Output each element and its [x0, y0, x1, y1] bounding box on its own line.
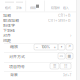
staticText: 字体: [15, 5, 21, 10]
staticText: 对齐: [3, 32, 11, 38]
button[interactable]: 间距: [0, 38, 76, 43]
staticText: ☷: [64, 64, 67, 68]
button[interactable]: Align left: [58, 53, 65, 59]
button[interactable]: 对齐: [0, 33, 76, 38]
button[interactable]: 插入: [61, 0, 72, 12]
staticText: 100%: [41, 45, 50, 49]
button[interactable]: 格式: [3, 0, 17, 12]
staticText: ↗: [68, 45, 71, 49]
staticText: ☰: [53, 64, 56, 68]
button[interactable]: 取消加粗: [0, 18, 76, 23]
staticText: Ctrl+Shift+B: [48, 18, 71, 23]
staticText: Ctrl+B: [58, 13, 71, 18]
staticText: 背景: [10, 72, 18, 77]
staticText: ▦: [67, 54, 71, 58]
staticText: 格式: [4, 5, 10, 10]
staticText: 下划线: [3, 27, 15, 33]
staticText: −: [35, 45, 38, 49]
staticText: 间距: [3, 37, 11, 43]
staticText: 项目符号: [9, 64, 25, 69]
button[interactable]: 加粗: [0, 13, 76, 18]
button[interactable]: Expand: [66, 44, 73, 50]
staticText: ▭: [59, 54, 63, 58]
staticText: Ctrl+T: [62, 73, 71, 77]
button[interactable]: Color: [58, 44, 65, 50]
staticText: 对齐方式: [9, 54, 25, 59]
staticText: ▪: [60, 45, 62, 49]
button[interactable]: 排版: [28, 0, 41, 12]
button[interactable]: Align grid: [66, 53, 73, 59]
staticText: 加粗: [3, 12, 11, 18]
staticText: 排版: [29, 5, 35, 10]
staticText: +: [53, 45, 56, 49]
button[interactable]: 字体: [14, 0, 25, 12]
button[interactable]: 斜体字: [0, 23, 76, 28]
button[interactable]: 段落样: [49, 0, 63, 12]
staticText: 缩放: [10, 44, 18, 49]
staticText: 段落样: [50, 5, 59, 10]
staticText: 插入: [62, 5, 68, 10]
button[interactable]: List: [50, 63, 59, 69]
staticText: 斜体字: [3, 22, 15, 28]
staticText: ›: [70, 33, 71, 38]
staticText: 取消加粗: [3, 17, 19, 23]
button[interactable]: 下划线: [0, 28, 76, 33]
button[interactable]: Indent: [60, 63, 71, 69]
